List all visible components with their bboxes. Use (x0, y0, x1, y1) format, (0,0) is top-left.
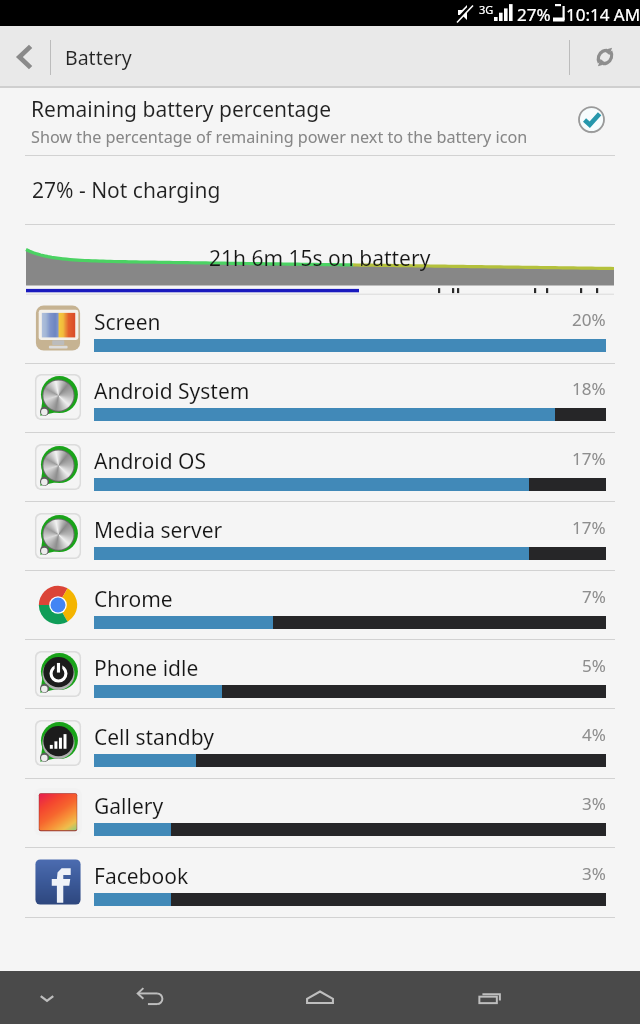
staticText: 21h 6m 15s on battery (209, 244, 431, 273)
button[interactable]: Android OS (0, 433, 640, 501)
staticText: 17% (572, 447, 606, 470)
staticText: 3G (479, 2, 494, 17)
button[interactable]: Hide keyboard (0, 971, 94, 1024)
button[interactable]: Back (0, 26, 50, 88)
staticText: Gallery (94, 792, 164, 821)
staticText: 17% (572, 516, 606, 539)
button[interactable]: Back (94, 971, 208, 1024)
button[interactable]: Cell standby (0, 709, 640, 777)
staticText: Battery (65, 44, 132, 71)
staticText: Facebook (94, 862, 189, 891)
staticText: 27% (517, 3, 551, 26)
staticText: Media server (94, 516, 223, 545)
staticText: Android System (94, 377, 250, 406)
button[interactable]: Gallery (0, 778, 640, 846)
staticText: Android OS (94, 447, 206, 476)
staticText: 18% (572, 377, 606, 400)
staticText: 3% (582, 792, 606, 815)
staticText: Chrome (94, 585, 173, 614)
staticText: 4% (582, 723, 606, 746)
button[interactable]: Chrome (0, 571, 640, 639)
button[interactable]: Remaining battery percentage (0, 88, 640, 155)
button[interactable]: Refresh (570, 26, 640, 88)
staticText: Remaining battery percentage (31, 95, 332, 124)
staticText: Screen (94, 308, 161, 337)
staticText: 5% (582, 654, 606, 677)
button[interactable]: Recents (415, 971, 565, 1024)
staticText: 20% (572, 308, 606, 331)
button[interactable]: Phone idle (0, 640, 640, 708)
staticText: 27% - Not charging (32, 176, 221, 205)
staticText: Show the percentage of remaining power n… (31, 126, 528, 148)
button[interactable]: Media server (0, 502, 640, 570)
staticText: 7% (582, 585, 606, 608)
staticText: Cell standby (94, 723, 214, 752)
button[interactable]: Android System (0, 363, 640, 431)
staticText: Phone idle (94, 654, 199, 683)
staticText: 10:14 AM (566, 3, 640, 26)
staticText: 3% (582, 862, 606, 885)
button[interactable]: Home (245, 971, 395, 1024)
button[interactable]: Screen (0, 294, 640, 362)
button[interactable]: 27% - Not charging (0, 156, 640, 224)
button[interactable]: Facebook (0, 848, 640, 916)
